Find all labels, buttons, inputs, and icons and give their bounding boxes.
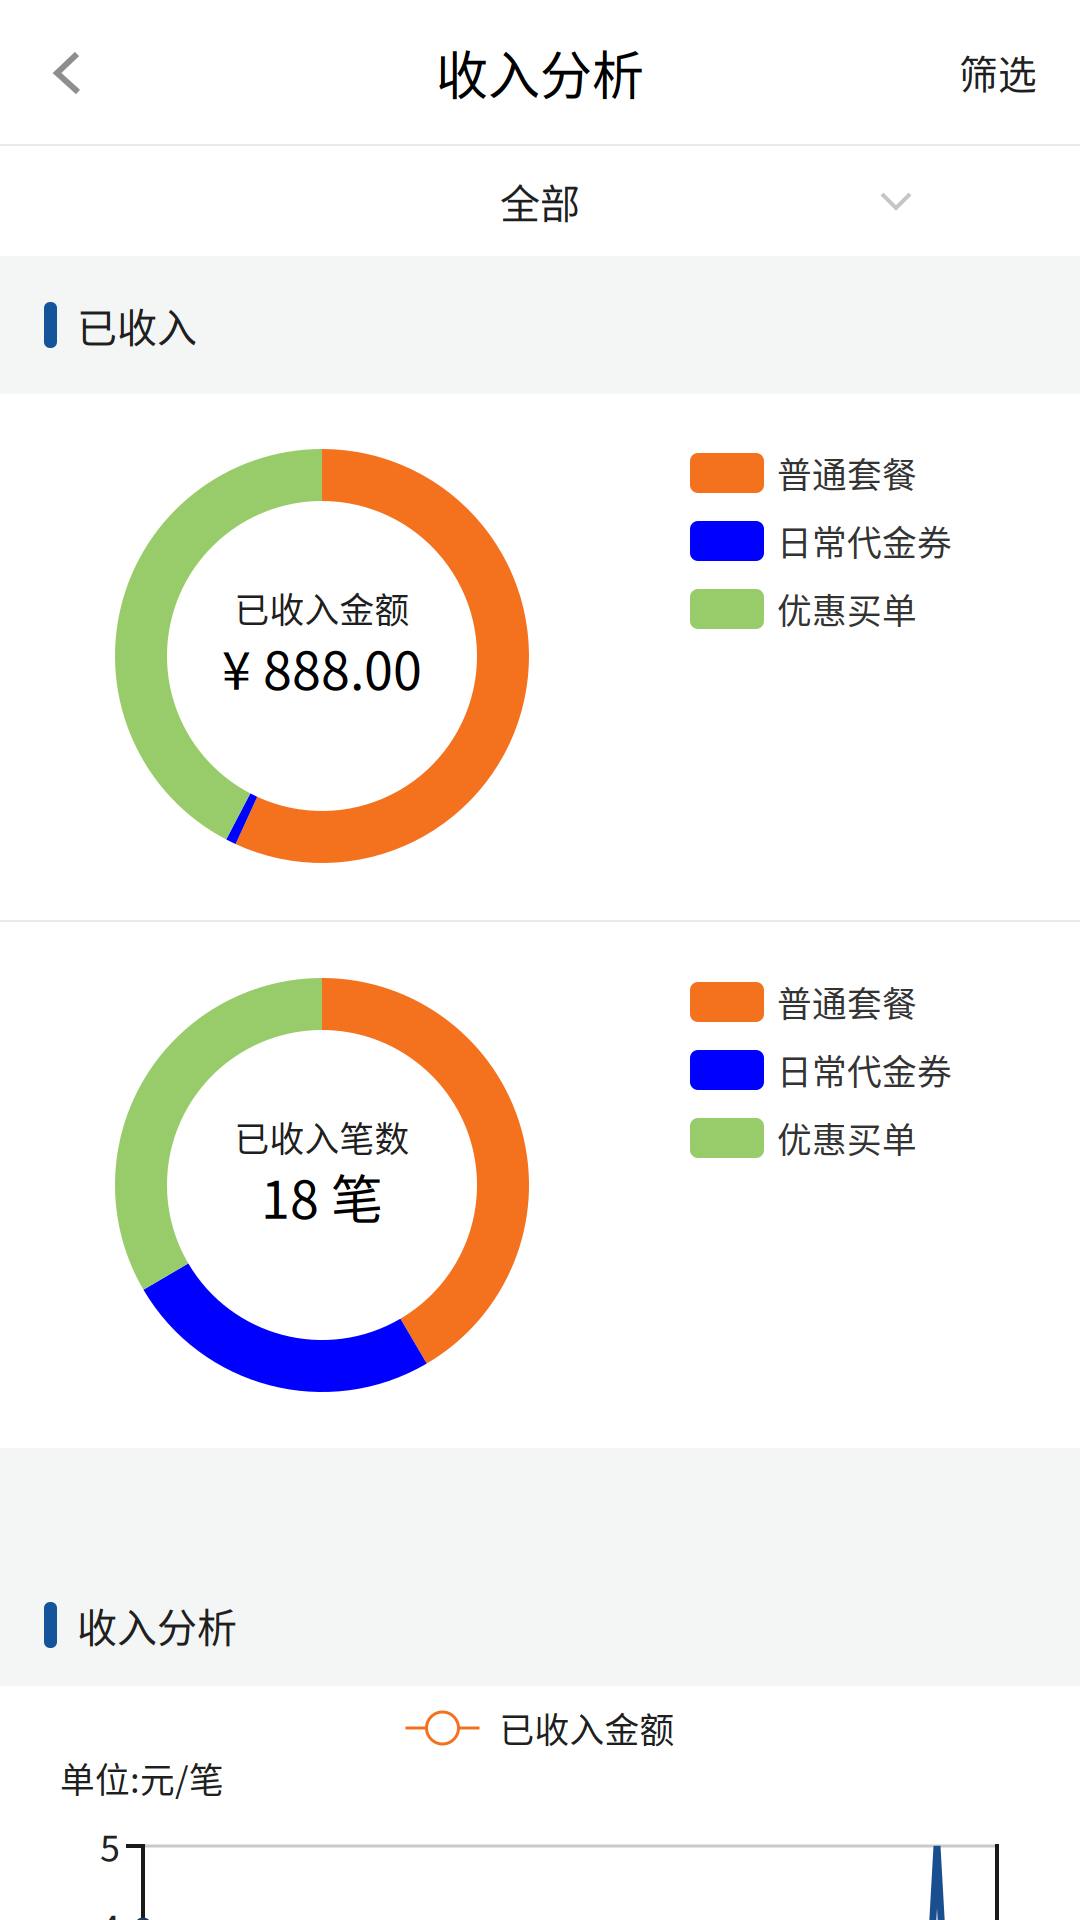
- staticText: 单位:元/笔: [60, 1753, 224, 1803]
- staticText: 优惠买单: [777, 584, 917, 634]
- staticText: ¥ 888.00: [222, 629, 422, 705]
- staticText: 普通套餐: [777, 977, 917, 1027]
- staticText: 已收入笔数: [234, 1112, 409, 1162]
- staticText: 筛选: [959, 44, 1037, 100]
- staticText: 4: [100, 1900, 120, 1920]
- staticText: 5: [100, 1820, 120, 1872]
- staticText: 全部: [500, 172, 580, 230]
- button[interactable]: 已收入金额: [0, 394, 1080, 920]
- staticText: 18 笔: [261, 1158, 383, 1234]
- button[interactable]: 已收入笔数: [0, 922, 1080, 1448]
- staticText: 已收入金额: [499, 1703, 674, 1753]
- staticText: 收入分析: [77, 1596, 237, 1654]
- staticText: 已收入金额: [234, 583, 409, 633]
- staticText: 日常代金券: [777, 516, 952, 566]
- button[interactable]: 返回: [0, 0, 124, 144]
- staticText: 普通套餐: [777, 448, 917, 498]
- button[interactable]: 全部: [0, 146, 1080, 256]
- staticText: 已收入: [77, 296, 197, 354]
- staticText: 日常代金券: [777, 1045, 952, 1095]
- button[interactable]: 筛选: [925, 0, 1080, 144]
- staticText: 优惠买单: [777, 1113, 917, 1163]
- staticText: 收入分析: [436, 34, 644, 110]
